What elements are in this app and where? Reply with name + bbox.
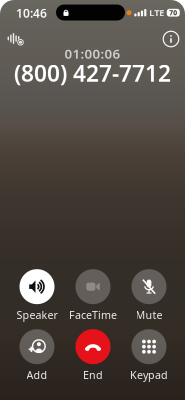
- staticText: Mute: [135, 308, 162, 322]
- button[interactable]: Keypad: [121, 332, 177, 379]
- staticText: 70: [169, 8, 177, 17]
- staticText: FaceTime: [69, 308, 117, 322]
- staticText: 01:00:06: [64, 45, 120, 62]
- button[interactable]: End: [65, 332, 121, 379]
- button[interactable]: Add: [9, 332, 65, 379]
- button[interactable]: Call details: [160, 28, 181, 49]
- staticText: (800) 427-7712: [14, 58, 171, 88]
- staticText: LTE: [149, 6, 164, 19]
- staticText: End: [83, 368, 103, 382]
- button[interactable]: FaceTime: [65, 272, 121, 319]
- button[interactable]: Mute: [121, 272, 177, 319]
- staticText: Add: [26, 368, 47, 382]
- staticText: Keypad: [130, 368, 168, 382]
- staticText: Speaker: [16, 308, 57, 322]
- button[interactable]: Speaker: [9, 272, 65, 319]
- staticText: 10:46: [16, 5, 47, 21]
